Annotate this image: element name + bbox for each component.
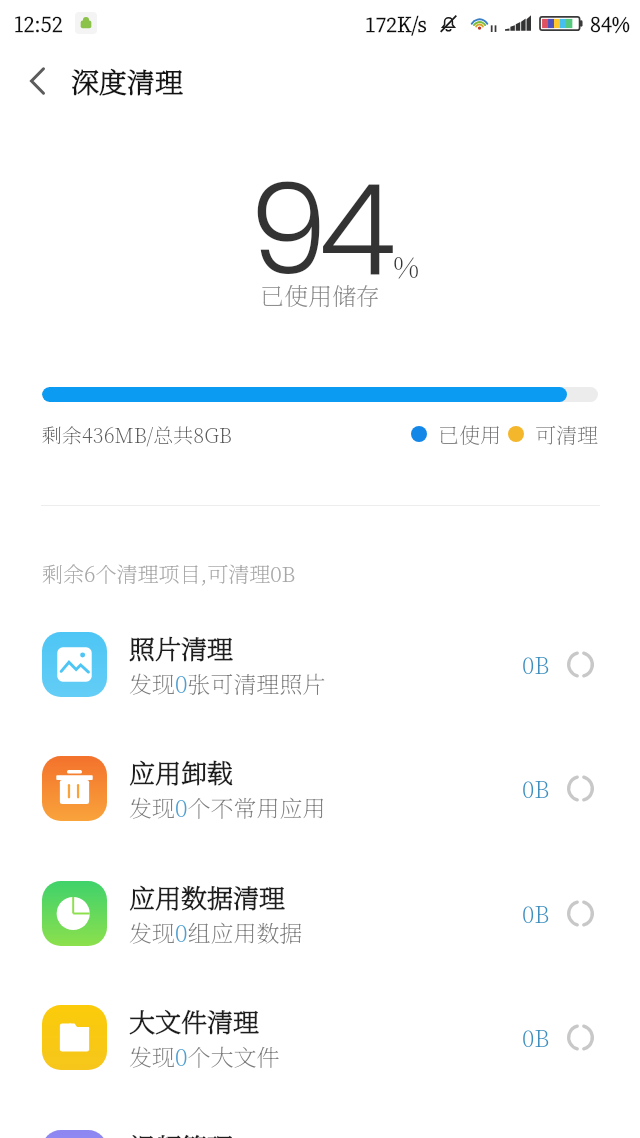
staticText: 剩余6个清理项目,可清理0B xyxy=(42,558,296,588)
button[interactable]: 大文件清理 xyxy=(0,975,640,1100)
staticText: 可清理 xyxy=(535,419,598,449)
staticText: 发现0个不常用应用 xyxy=(129,791,326,824)
staticText: 0B xyxy=(522,897,550,930)
staticText: 0B xyxy=(522,772,550,805)
staticText: 应用卸载 xyxy=(129,753,234,790)
staticText: 深度清理 xyxy=(71,61,184,101)
button[interactable]: Back xyxy=(0,55,66,107)
staticText: 0B xyxy=(522,1021,550,1054)
staticText: 剩余436MB/总共8GB xyxy=(42,420,232,449)
staticText: 发现0组应用数据 xyxy=(129,916,303,949)
staticText: 84% xyxy=(590,9,630,38)
staticText: 0B xyxy=(522,648,550,681)
button[interactable]: 应用卸载 xyxy=(0,726,640,851)
staticText: 大文件清理 xyxy=(129,1002,260,1039)
staticText: 发现0张可清理照片 xyxy=(129,667,326,700)
button[interactable]: 应用数据清理 xyxy=(0,851,640,976)
staticText: % xyxy=(393,245,420,287)
button[interactable]: 视频管理 xyxy=(0,1100,640,1138)
staticText: 12:52 xyxy=(14,9,63,38)
staticText: 172K/s xyxy=(365,9,427,38)
staticText: 94 xyxy=(249,142,387,318)
staticText: 视频管理 xyxy=(129,1127,234,1138)
staticText: 已使用 xyxy=(438,419,501,449)
staticText: 已使用储存 xyxy=(260,277,380,311)
staticText: 照片清理 xyxy=(129,629,234,666)
staticText: 发现0个大文件 xyxy=(129,1040,280,1073)
staticText: 应用数据清理 xyxy=(129,878,286,915)
button[interactable]: 照片清理 xyxy=(0,602,640,727)
